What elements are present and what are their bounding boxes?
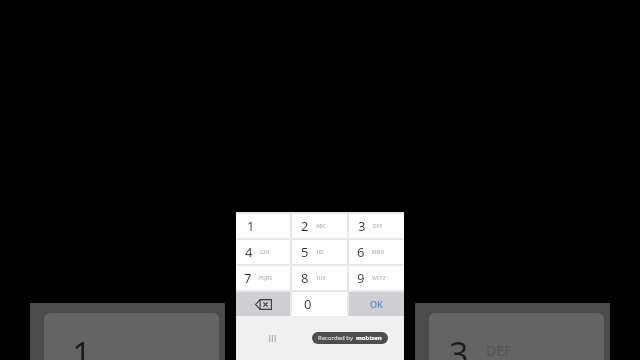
staticText: JKL [317, 249, 325, 256]
button[interactable]: 6 [349, 240, 404, 264]
button[interactable]: 8 [292, 266, 347, 290]
button[interactable]: 1 [236, 214, 290, 238]
button[interactable]: 2 [292, 214, 347, 238]
button[interactable]: Recents [264, 330, 280, 346]
staticText: Recorded by [318, 334, 353, 342]
staticText: 6 [357, 243, 365, 261]
staticText: 0 [304, 295, 312, 313]
staticText: 8 [301, 269, 309, 287]
staticText: 2 [301, 217, 309, 235]
button[interactable]: OK [349, 292, 404, 316]
staticText: 4 [245, 243, 253, 261]
staticText: 5 [301, 243, 309, 261]
button[interactable]: 5 [292, 240, 347, 264]
staticText: 3 [358, 217, 366, 235]
button[interactable]: 7 [236, 266, 290, 290]
button[interactable]: 9 [349, 266, 404, 290]
staticText: 9 [357, 269, 365, 287]
staticText: PQRS [259, 275, 272, 282]
staticText: WXYZ [372, 275, 386, 282]
button[interactable]: Backspace [236, 292, 290, 316]
staticText: GHI [260, 249, 270, 256]
staticText: 1 [247, 217, 255, 235]
staticText: 3 [449, 331, 469, 360]
staticText: ABC [316, 223, 326, 230]
staticText: 1 [72, 331, 92, 360]
button[interactable]: 4 [236, 240, 290, 264]
button[interactable]: 3 [349, 214, 404, 238]
button[interactable]: 3 [429, 313, 604, 360]
staticText: DEF [373, 223, 383, 230]
staticText: MNO [372, 249, 385, 256]
button[interactable]: 0 [292, 292, 347, 316]
staticText: DEF [486, 341, 512, 360]
staticText: mobizen [356, 334, 382, 342]
staticText: OK [370, 298, 383, 310]
button[interactable]: 1 [44, 313, 219, 360]
staticText: 7 [244, 269, 252, 287]
staticText: TUV [316, 275, 326, 282]
